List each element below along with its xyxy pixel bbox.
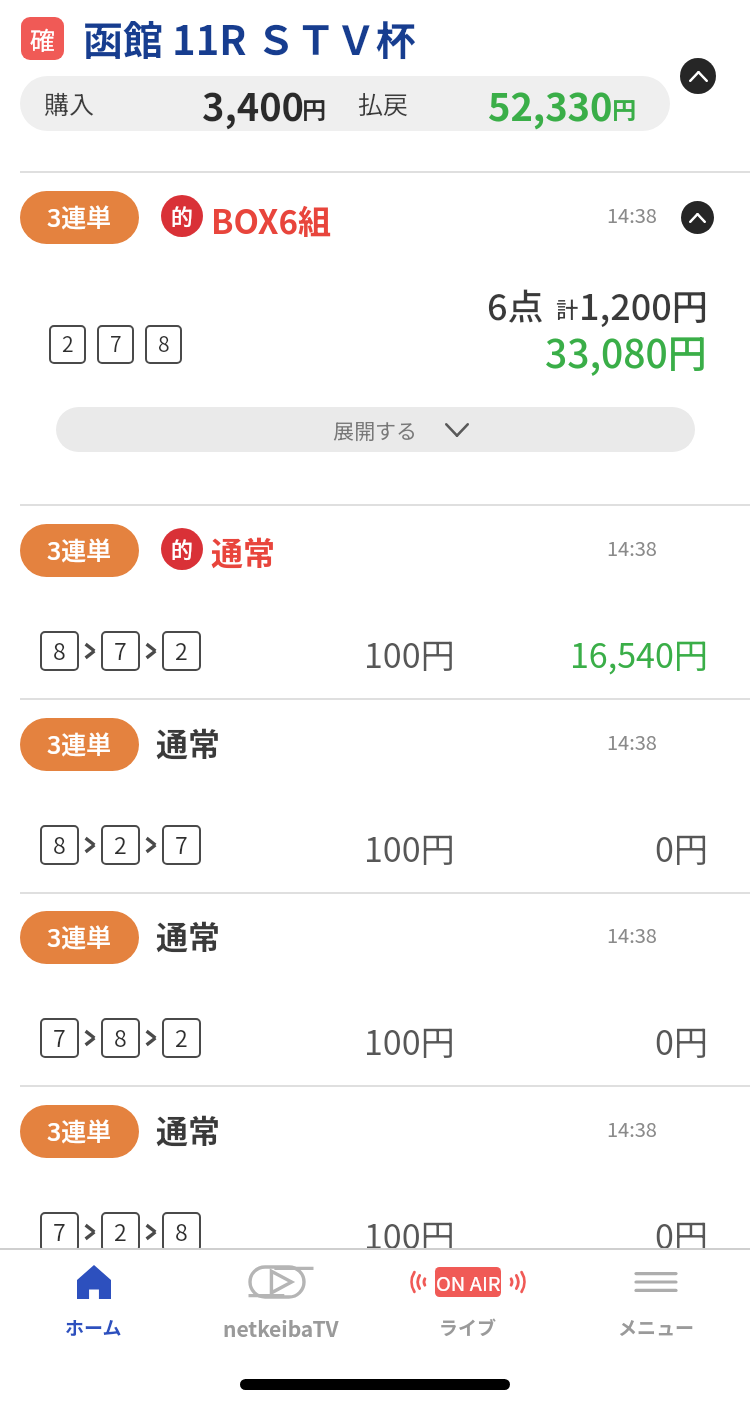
staticText: 100円 bbox=[364, 629, 455, 678]
staticText: 3,400 bbox=[202, 77, 305, 131]
staticText: 円 bbox=[302, 91, 326, 126]
staticText: 3連単 bbox=[47, 531, 112, 567]
button[interactable]: Collapse bbox=[680, 58, 716, 94]
staticText: 7 bbox=[175, 827, 188, 860]
staticText: 8 bbox=[53, 827, 66, 860]
staticText: 的 bbox=[171, 532, 194, 564]
staticText: 通常 bbox=[156, 719, 221, 765]
staticText: メニュー bbox=[618, 1313, 695, 1341]
staticText: 8 bbox=[158, 328, 170, 358]
staticText: 52,330 bbox=[488, 77, 613, 131]
button[interactable]: 3連単 bbox=[20, 524, 139, 577]
staticText: 2 bbox=[175, 1020, 188, 1053]
staticText: 2 bbox=[114, 1214, 127, 1247]
button[interactable]: ホーム bbox=[0, 1250, 187, 1341]
staticText: 7 bbox=[114, 633, 127, 666]
staticText: 14:38 bbox=[607, 533, 657, 562]
staticText: 3連単 bbox=[47, 918, 112, 954]
staticText: 円 bbox=[612, 91, 636, 126]
staticText: 100円 bbox=[364, 1210, 455, 1259]
staticText: 14:38 bbox=[607, 920, 657, 949]
staticText: 確 bbox=[30, 21, 56, 57]
staticText: 2 bbox=[175, 633, 188, 666]
staticText: 7 bbox=[110, 328, 122, 358]
staticText: 函館 11R ＳＴＶ杯 bbox=[83, 9, 416, 67]
staticText: 通常 bbox=[156, 912, 221, 958]
staticText: 8 bbox=[114, 1020, 127, 1053]
staticText: 払戻 bbox=[358, 85, 409, 121]
staticText: 7 bbox=[53, 1020, 66, 1053]
staticText: ホーム bbox=[65, 1313, 122, 1341]
staticText: 通常 bbox=[156, 1106, 221, 1152]
staticText: 計 bbox=[556, 292, 579, 324]
staticText: ライブ bbox=[439, 1313, 497, 1341]
staticText: 14:38 bbox=[607, 727, 657, 756]
button[interactable]: ON AIR bbox=[374, 1250, 562, 1341]
button[interactable]: 3連単 bbox=[20, 1105, 139, 1158]
button[interactable]: 購入 bbox=[20, 76, 670, 131]
button[interactable]: メニュー bbox=[562, 1250, 750, 1341]
staticText: 3連単 bbox=[47, 198, 112, 234]
staticText: 0円 bbox=[655, 1210, 708, 1259]
staticText: 7 bbox=[53, 1214, 66, 1247]
staticText: 2 bbox=[114, 827, 127, 860]
button[interactable]: 3連単 bbox=[20, 911, 139, 964]
staticText: 3連単 bbox=[47, 725, 112, 761]
staticText: BOX6組 bbox=[211, 196, 331, 244]
staticText: 通常 bbox=[211, 528, 276, 574]
staticText: 展開する bbox=[333, 415, 417, 445]
staticText: 2 bbox=[62, 328, 74, 358]
button[interactable]: netkeibaTV bbox=[187, 1250, 374, 1343]
staticText: 購入 bbox=[44, 85, 95, 121]
button[interactable]: 3連単 bbox=[20, 191, 139, 244]
staticText: ON AIR bbox=[436, 1268, 501, 1297]
button[interactable]: 展開する bbox=[56, 407, 695, 452]
staticText: 0円 bbox=[655, 823, 708, 872]
staticText: 16,540円 bbox=[570, 629, 708, 678]
staticText: 6点 bbox=[487, 278, 544, 330]
staticText: 0円 bbox=[655, 1016, 708, 1065]
staticText: netkeibaTV bbox=[223, 1313, 339, 1343]
staticText: 3連単 bbox=[47, 1112, 112, 1148]
staticText: 14:38 bbox=[607, 1114, 657, 1143]
staticText: 8 bbox=[175, 1214, 188, 1247]
staticText: 1,200円 bbox=[579, 278, 708, 330]
staticText: 100円 bbox=[364, 823, 455, 872]
staticText: 33,080円 bbox=[545, 323, 707, 379]
staticText: 8 bbox=[53, 633, 66, 666]
staticText: 的 bbox=[171, 199, 194, 231]
staticText: 100円 bbox=[364, 1016, 455, 1065]
staticText: 14:38 bbox=[607, 200, 657, 229]
button[interactable]: Collapse bbox=[681, 201, 714, 234]
button[interactable]: 3連単 bbox=[20, 718, 139, 771]
